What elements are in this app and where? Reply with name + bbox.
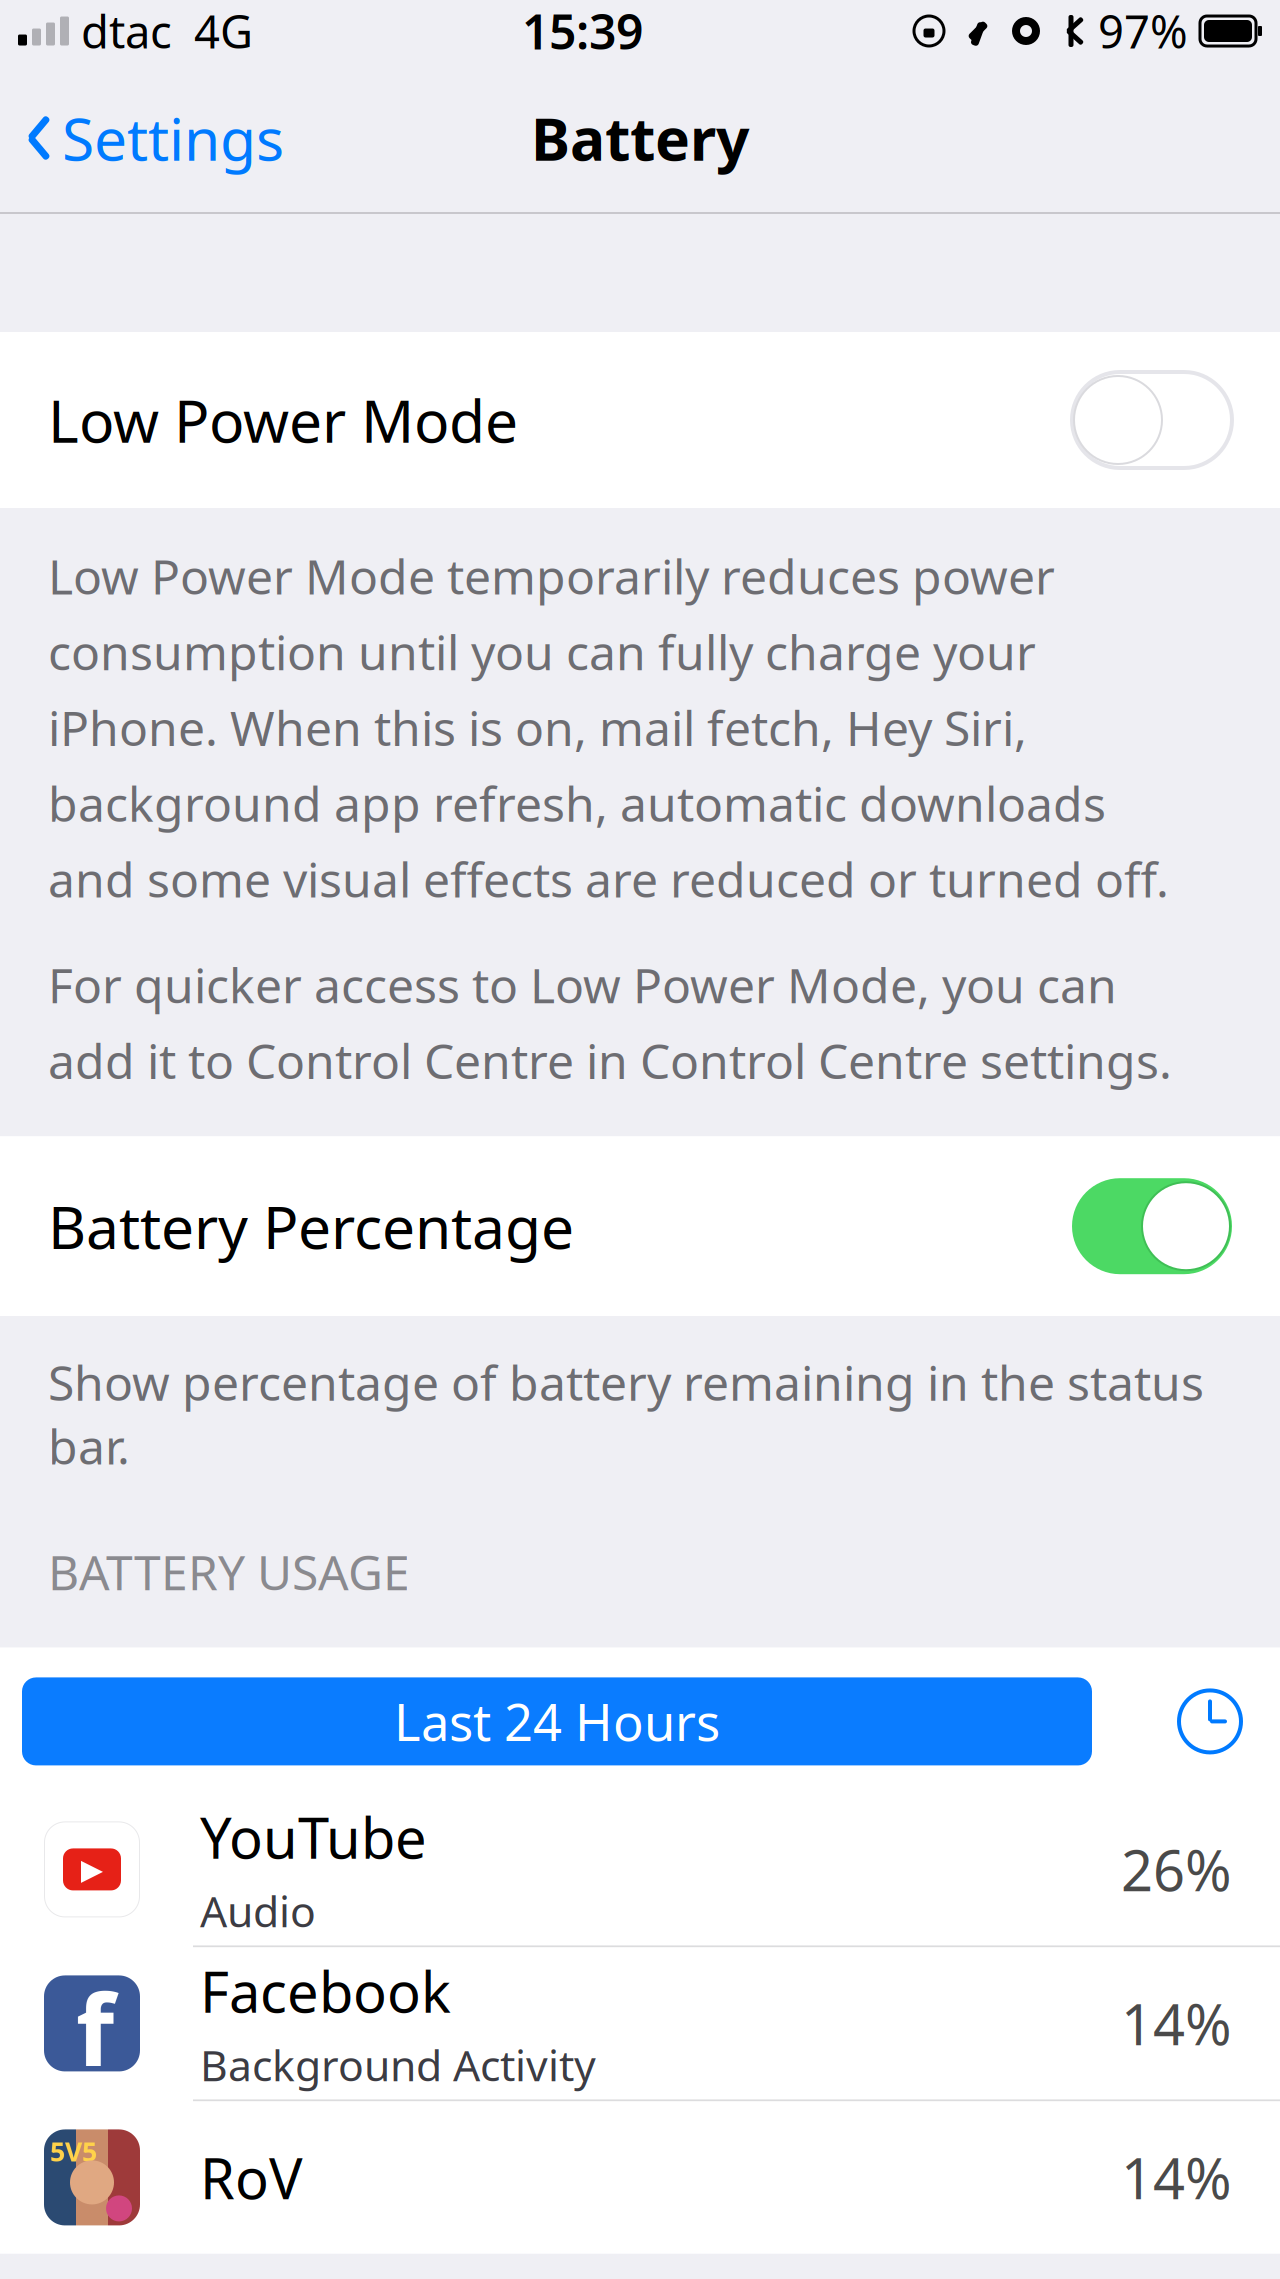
staticText: f xyxy=(76,1962,114,2093)
staticText: 14% xyxy=(1121,2140,1232,2215)
staticText: Low Power Mode temporarily reduces power… xyxy=(48,544,1169,911)
staticText: Audio xyxy=(200,1882,316,1939)
button[interactable]: Battery Percentage xyxy=(0,1136,1280,1316)
staticText: 4G xyxy=(194,1,253,61)
button[interactable]: Show last 10 days xyxy=(1162,1677,1258,1765)
staticText: dtac xyxy=(81,1,172,61)
staticText: 14% xyxy=(1121,1986,1232,2061)
staticText: 15:39 xyxy=(522,0,643,63)
staticText: 26% xyxy=(1121,1832,1232,1907)
staticText: Show percentage of battery remaining in … xyxy=(48,1350,1204,1478)
staticText: ▶ xyxy=(80,1853,103,1886)
staticText: Last 24 Hours xyxy=(394,1688,720,1755)
staticText: YouTube xyxy=(200,1800,427,1874)
staticText: Settings xyxy=(62,99,284,177)
staticText: 97% xyxy=(1098,1,1188,61)
staticText: For quicker access to Low Power Mode, yo… xyxy=(48,953,1172,1092)
button[interactable]: Low Power Mode xyxy=(0,332,1280,508)
button[interactable]: ▶ xyxy=(0,1793,1280,1945)
staticText: BATTERY USAGE xyxy=(48,1540,410,1603)
button[interactable]: Settings xyxy=(0,85,284,191)
button[interactable]: Last 24 Hours xyxy=(22,1677,1092,1765)
staticText: Low Power Mode xyxy=(48,381,518,459)
staticText: Battery Percentage xyxy=(48,1187,574,1265)
button[interactable]: 5V5 xyxy=(0,2101,1280,2253)
staticText: Facebook xyxy=(200,1954,451,2028)
button[interactable]: f xyxy=(0,1947,1280,2099)
staticText: RoV xyxy=(200,2140,303,2215)
staticText: 5V5 xyxy=(50,2133,97,2169)
staticText: Background Activity xyxy=(200,2036,596,2093)
staticText: Battery xyxy=(531,99,749,177)
